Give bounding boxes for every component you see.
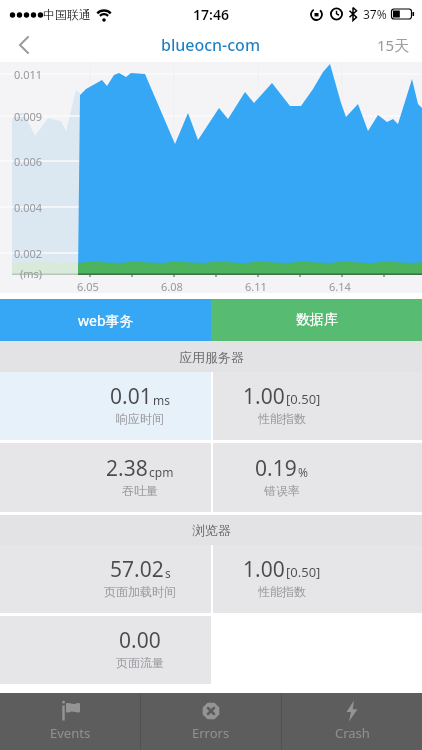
button[interactable]: 0.01 (0, 372, 211, 440)
button[interactable]: 2.38 (0, 443, 211, 512)
staticText: [0.50] (286, 390, 321, 408)
staticText: 响应时间 (116, 411, 164, 426)
button[interactable]: web事务 (0, 299, 211, 341)
staticText: 错误率 (264, 483, 300, 498)
staticText: 页面加载时间 (104, 584, 176, 599)
staticText: 页面流量 (116, 655, 164, 670)
staticText: 0.006 (14, 154, 43, 169)
staticText: 性能指数 (258, 411, 306, 426)
button[interactable]: Crash (282, 693, 422, 750)
button[interactable]: 15天 (377, 35, 410, 55)
staticText: 57.02 (110, 555, 164, 584)
staticText: 0.01 (110, 382, 152, 411)
staticText: 0.004 (14, 200, 43, 215)
staticText: 0.009 (14, 109, 43, 124)
staticText: [0.50] (286, 563, 321, 581)
button[interactable]: 0.19 (213, 443, 422, 512)
staticText: ms (153, 392, 170, 408)
staticText: 性能指数 (258, 584, 306, 599)
staticText: Events (50, 724, 91, 742)
staticText: 0.00 (119, 626, 161, 655)
staticText: Errors (192, 724, 230, 742)
staticText: 数据库 (296, 311, 338, 329)
button[interactable]: 数据库 (211, 299, 422, 341)
staticText: (ms) (20, 266, 43, 281)
staticText: 吞吐量 (122, 483, 158, 498)
staticText: 浏览器 (192, 522, 231, 538)
staticText: 6.05 (77, 279, 99, 294)
staticText: cpm (149, 464, 174, 480)
staticText: 6.08 (161, 279, 183, 294)
staticText: 2.38 (106, 454, 148, 483)
button[interactable]: 1.00 (213, 545, 422, 613)
staticText: 1.00 (243, 555, 285, 584)
staticText: 中国联通 (43, 7, 91, 22)
button[interactable]: Events (0, 693, 140, 750)
staticText: 应用服务器 (179, 349, 244, 365)
staticText: s (165, 565, 171, 581)
staticText: Crash (335, 724, 370, 742)
button[interactable]: 1.00 (213, 372, 422, 440)
staticText: 17:46 (193, 5, 229, 24)
button[interactable]: Errors (141, 693, 281, 750)
staticText: 6.14 (329, 279, 351, 294)
staticText: 6.11 (245, 279, 267, 294)
staticText: % (298, 464, 308, 480)
button[interactable] (11, 32, 37, 58)
button[interactable]: 57.02 (0, 545, 211, 613)
staticText: 0.011 (14, 67, 43, 82)
button[interactable]: 0.00 (0, 616, 211, 684)
staticText: 37% (363, 6, 387, 22)
staticText: web事务 (78, 311, 134, 330)
button[interactable]: blueocn-com (161, 34, 261, 56)
staticText: 1.00 (243, 382, 285, 411)
staticText: 0.002 (14, 246, 43, 261)
staticText: 0.19 (255, 454, 297, 483)
